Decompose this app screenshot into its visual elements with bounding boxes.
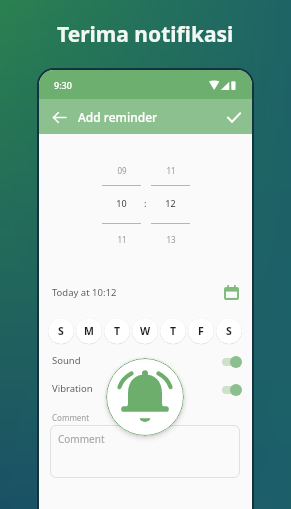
staticText: T (114, 324, 121, 338)
staticText: 11 (166, 165, 176, 176)
staticText: Vibration (52, 382, 93, 395)
staticText: : (144, 197, 147, 209)
button[interactable]: Pick date (221, 282, 241, 302)
staticText: W (140, 324, 151, 338)
button[interactable]: Notification reminder (106, 358, 184, 436)
staticText: 12 (165, 197, 176, 209)
staticText: M (84, 324, 94, 338)
button[interactable]: M (76, 318, 102, 344)
staticText: S (58, 324, 64, 338)
staticText: Add reminder (78, 109, 158, 125)
staticText: Today at 10:12 (52, 286, 117, 299)
button[interactable]: Back (48, 106, 70, 128)
button[interactable]: Sound (39, 351, 252, 369)
staticText: 09 (117, 165, 127, 176)
staticText: T (170, 324, 177, 338)
staticText: S (226, 324, 232, 338)
button[interactable]: Vibration (39, 379, 252, 397)
button[interactable]: S (48, 318, 74, 344)
button[interactable]: F (188, 318, 214, 344)
staticText: 13 (166, 234, 176, 245)
button[interactable]: T (160, 318, 186, 344)
staticText: Terima notifikasi (57, 20, 234, 49)
staticText: Comment (52, 412, 90, 423)
staticText: F (198, 324, 204, 338)
button[interactable]: Comment (50, 425, 240, 478)
button[interactable]: 09 (102, 165, 141, 247)
staticText: Sound (52, 354, 81, 367)
staticText: 9:30 (54, 79, 72, 91)
button[interactable]: Save reminder (222, 105, 246, 129)
staticText: 10 (116, 197, 127, 209)
button[interactable]: S (216, 318, 242, 344)
button[interactable]: W (132, 318, 158, 344)
staticText: Comment (58, 432, 105, 446)
staticText: 11 (117, 234, 127, 245)
button[interactable]: T (104, 318, 130, 344)
button[interactable]: 11 (151, 165, 190, 247)
